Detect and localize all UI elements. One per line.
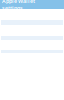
staticText: Apple Wallet settings (2, 0, 35, 12)
